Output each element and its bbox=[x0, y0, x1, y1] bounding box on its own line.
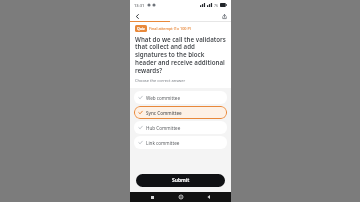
staticText: Quiz bbox=[137, 26, 145, 31]
staticText: Sync Committee bbox=[146, 110, 182, 116]
staticText: What do we call the validators that coll… bbox=[135, 35, 226, 75]
staticText: Final attempt (1x 100 P) bbox=[149, 26, 191, 31]
button[interactable]: Recents bbox=[145, 192, 159, 202]
button[interactable]: Web committee bbox=[134, 91, 227, 104]
button[interactable]: Back bbox=[202, 192, 216, 202]
staticText: Hub Committee bbox=[146, 125, 181, 131]
button[interactable]: Back bbox=[133, 12, 141, 20]
staticText: 13:31 bbox=[134, 3, 145, 8]
button[interactable]: Sync Committee bbox=[134, 106, 227, 119]
button[interactable]: Submit bbox=[136, 174, 225, 187]
staticText: Web committee bbox=[146, 95, 181, 101]
button[interactable]: Share bbox=[220, 12, 228, 20]
button[interactable]: Hub Committee bbox=[134, 121, 227, 134]
staticText: Link committee bbox=[146, 140, 180, 146]
staticText: Choose the correct answer bbox=[135, 78, 186, 83]
button[interactable]: Link committee bbox=[134, 136, 227, 149]
button[interactable]: Home bbox=[174, 192, 188, 202]
staticText: 76 bbox=[214, 3, 219, 8]
staticText: Submit bbox=[172, 177, 190, 184]
